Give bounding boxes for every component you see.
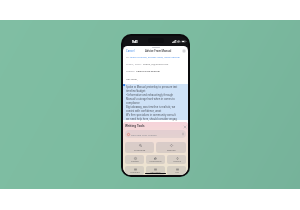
- staticText: Big takeaway, was timeline is realistic,…: [126, 105, 176, 108]
- staticText: Manual's outrage hard when in comes to: [126, 97, 175, 100]
- button[interactable]: Professional: [146, 155, 165, 164]
- button[interactable]: Concise: [167, 155, 186, 164]
- button[interactable]: Close: [183, 125, 186, 128]
- staticText: Writing Tools: [125, 124, 145, 128]
- button[interactable]: Friendly: [125, 155, 144, 164]
- staticText: List: [175, 171, 179, 174]
- staticText: Cancel: [126, 49, 135, 53]
- staticText: Spoke w Manual yesterday to pressure tes…: [126, 85, 178, 88]
- staticText: Advice from Manual: [136, 69, 160, 72]
- staticText: Hey team,: [126, 77, 138, 80]
- staticText: Key Points: [150, 171, 161, 174]
- button[interactable]: Proofread: [125, 142, 154, 153]
- staticText: Describe your change: [131, 133, 157, 136]
- staticText: Advice From Manual: [145, 49, 172, 53]
- staticText: • Informative and exhaustingly through: [126, 93, 174, 96]
- staticText: Professional: [149, 160, 162, 163]
- button[interactable]: List: [167, 166, 186, 175]
- staticText: Proofread: [134, 148, 146, 151]
- staticText: To:: [126, 55, 130, 58]
- button[interactable]: Key Points: [146, 166, 165, 175]
- staticText: sperio_m@icloud.com: [143, 62, 169, 65]
- staticText: compliance: [126, 101, 140, 104]
- button[interactable]: Summary: [125, 166, 144, 175]
- staticText: Cc/Bcc, From:: [126, 62, 143, 65]
- button[interactable]: Rewrite: [156, 142, 186, 153]
- staticText: Summary: [130, 171, 140, 174]
- staticText: Rewrite: [167, 148, 176, 151]
- staticText: W's firm specializes in community consul…: [126, 113, 176, 116]
- staticText: Marie Thureau, Enhaus Serie, Seria March…: [130, 55, 180, 58]
- staticText: Concise: [173, 160, 181, 163]
- staticText: 9:41: [132, 40, 138, 44]
- button[interactable]: Describe your change: [125, 130, 186, 138]
- button[interactable]: Send: [182, 49, 186, 53]
- staticText: Subject:: [126, 69, 136, 72]
- button[interactable]: Cancel: [126, 49, 135, 53]
- staticText: coexist with confidence, woot: [126, 109, 162, 112]
- staticText: Friendly: [131, 160, 139, 163]
- staticText: we need help here, should consider engag: [126, 117, 177, 120]
- staticText: timeline/budget: [126, 89, 146, 92]
